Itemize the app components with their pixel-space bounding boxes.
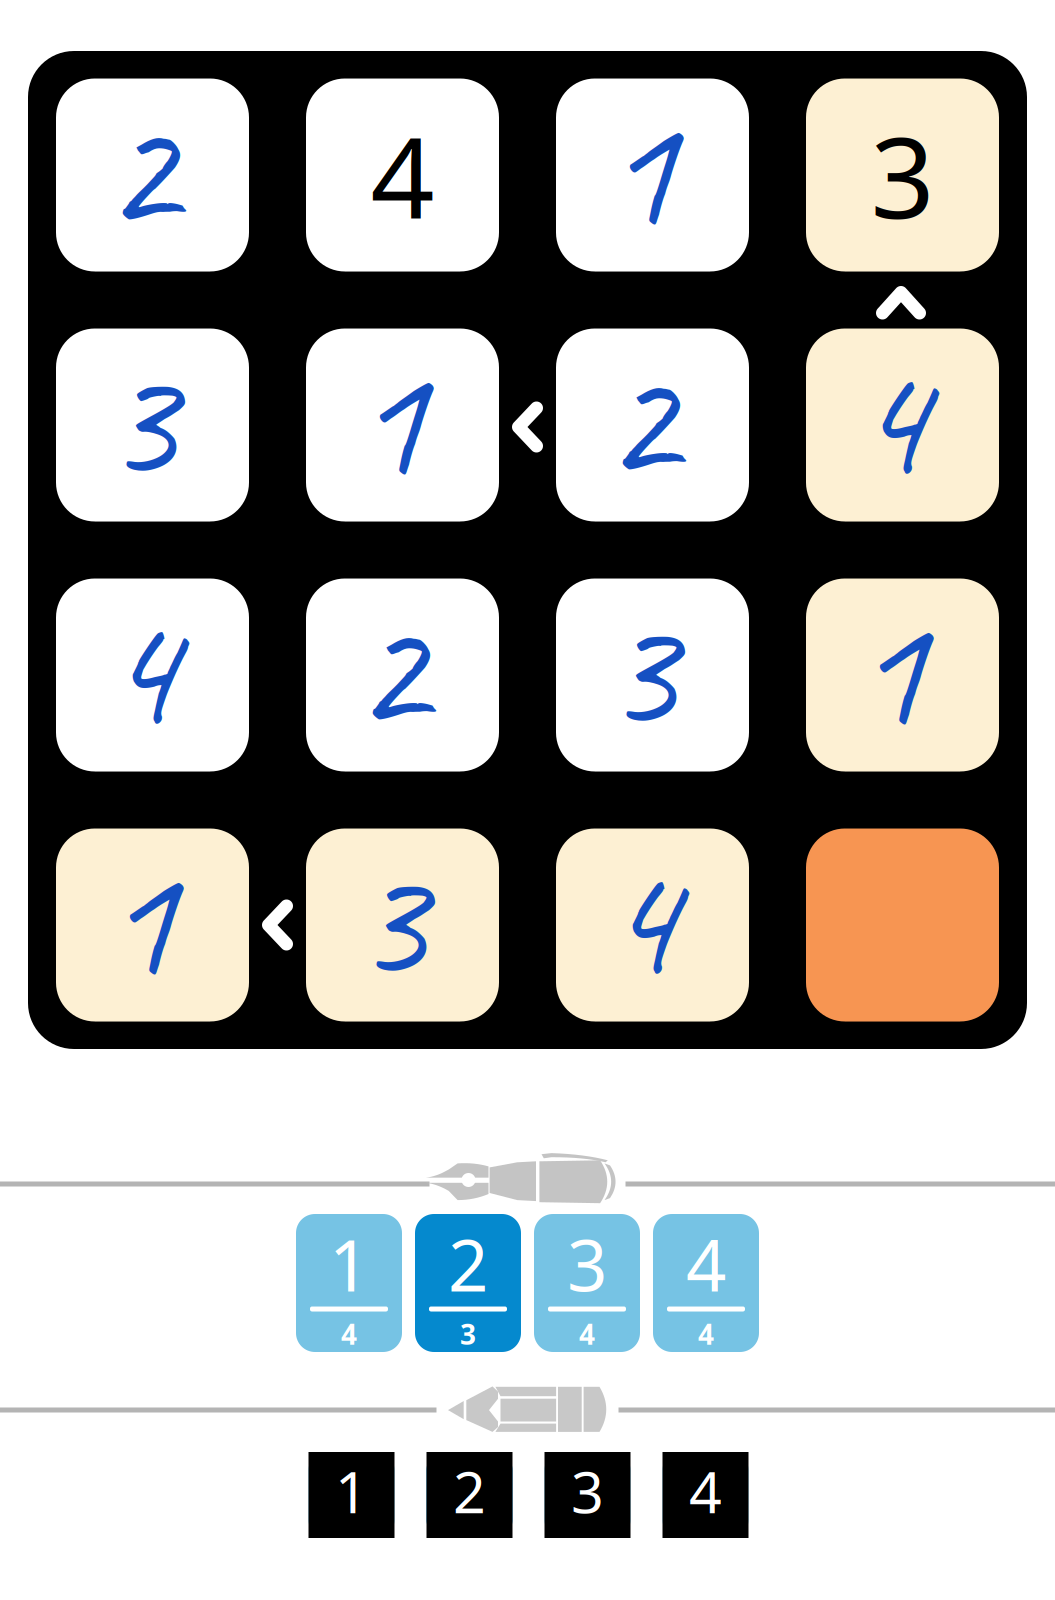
- button[interactable]: 2: [415, 1214, 521, 1352]
- staticText: 2: [453, 1453, 486, 1529]
- button[interactable]: 2: [56, 78, 249, 271]
- staticText: 3: [571, 1453, 604, 1529]
- staticText: 3: [103, 316, 176, 521]
- staticText: 3: [460, 1315, 476, 1353]
- button[interactable]: 1: [556, 78, 749, 271]
- button[interactable]: 3: [56, 328, 249, 521]
- staticText: 4: [341, 1315, 357, 1353]
- staticText: 1: [335, 1453, 368, 1529]
- staticText: 4: [689, 1453, 722, 1529]
- staticText: 4: [698, 1315, 714, 1353]
- button[interactable]: 4: [306, 78, 499, 271]
- button[interactable]: 3: [806, 78, 999, 271]
- button[interactable]: 4: [653, 1214, 759, 1352]
- button[interactable]: 4: [56, 578, 249, 771]
- staticText: 1: [103, 816, 176, 1021]
- staticText: 4: [579, 1315, 595, 1353]
- staticText: 2: [103, 66, 176, 271]
- button[interactable]: 1: [306, 328, 499, 521]
- staticText: 4: [103, 566, 176, 771]
- staticText: 3: [603, 566, 676, 771]
- staticText: 2: [603, 316, 676, 521]
- button[interactable]: 4: [662, 1452, 748, 1538]
- staticText: 2: [353, 566, 426, 771]
- staticText: 1: [853, 566, 926, 771]
- button[interactable]: 3: [306, 828, 499, 1021]
- button[interactable]: 3: [534, 1214, 640, 1352]
- button[interactable]: 3: [556, 578, 749, 771]
- staticText: 1: [329, 1217, 369, 1311]
- staticText: 4: [686, 1217, 726, 1311]
- button[interactable]: [806, 828, 999, 1021]
- staticText: 3: [353, 816, 426, 1021]
- staticText: 4: [370, 101, 434, 249]
- staticText: 1: [603, 66, 676, 271]
- button[interactable]: 1: [806, 578, 999, 771]
- button[interactable]: 1: [56, 828, 249, 1021]
- button[interactable]: 4: [806, 328, 999, 521]
- button[interactable]: 3: [544, 1452, 630, 1538]
- button[interactable]: 2: [556, 328, 749, 521]
- button[interactable]: 2: [426, 1452, 512, 1538]
- staticText: 1: [353, 316, 426, 521]
- button[interactable]: 4: [556, 828, 749, 1021]
- staticText: 4: [853, 316, 926, 521]
- button[interactable]: 2: [306, 578, 499, 771]
- button[interactable]: 1: [296, 1214, 402, 1352]
- staticText: 2: [448, 1217, 488, 1311]
- staticText: 3: [567, 1217, 607, 1311]
- button[interactable]: 1: [308, 1452, 394, 1538]
- staticText: 4: [603, 816, 676, 1021]
- staticText: 3: [870, 101, 934, 249]
